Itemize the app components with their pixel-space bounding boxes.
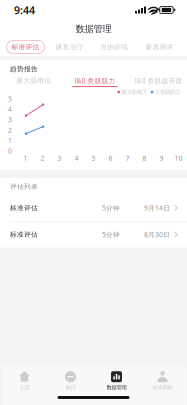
staticText: 5 <box>8 94 12 103</box>
staticText: 8 <box>142 154 146 163</box>
staticText: 趋势报告 <box>10 65 38 73</box>
staticText: 9 <box>159 154 163 163</box>
staticText: 2 <box>40 154 44 163</box>
button[interactable]: 教程 <box>47 368 93 394</box>
button[interactable]: I&II 类肌肌力 <box>72 76 118 87</box>
staticText: 5 <box>91 154 95 163</box>
staticText: 0 <box>8 146 12 155</box>
button[interactable]: 量表测评 <box>140 40 178 54</box>
staticText: 标准评估 <box>10 230 38 239</box>
staticText: I&II 类肌疲劳度 <box>134 76 182 85</box>
staticText: 康复治疗 <box>55 43 83 51</box>
staticText: 最大肌电位 <box>16 76 51 85</box>
button[interactable]: 最大肌电位 <box>9 76 59 87</box>
button[interactable]: 数据管理 <box>93 368 139 394</box>
staticText: 10 <box>174 154 182 163</box>
staticText: 账本我的 <box>152 384 172 391</box>
staticText: 最大肌电力 <box>122 89 147 95</box>
button[interactable]: 标准评估 <box>0 222 187 248</box>
staticText: I&II 类肌肌力 <box>74 76 115 85</box>
staticText: 大类肌肌力 <box>155 89 180 95</box>
staticText: 3 <box>57 154 61 163</box>
staticText: 2 <box>8 126 12 134</box>
staticText: 7 <box>125 154 129 163</box>
staticText: 5分钟 <box>102 204 120 212</box>
staticText: 主页 <box>19 384 29 391</box>
button[interactable]: 自由训练 <box>95 40 133 54</box>
staticText: 1 <box>8 136 12 145</box>
staticText: 标准评估 <box>10 204 38 212</box>
staticText: 9:44 <box>14 3 35 17</box>
staticText: 6 <box>108 154 112 163</box>
staticText: 量表测评 <box>145 43 173 51</box>
staticText: 教程 <box>65 384 75 391</box>
staticText: 9月14日 <box>144 204 170 212</box>
staticText: 自由训练 <box>100 43 128 51</box>
staticText: 标准评估 <box>11 43 39 51</box>
button[interactable]: 康复治疗 <box>50 40 88 54</box>
button[interactable]: 账本我的 <box>139 368 185 394</box>
button[interactable]: 标准评估 <box>6 40 44 54</box>
staticText: 3 <box>8 115 12 124</box>
staticText: 数据管理 <box>106 384 126 391</box>
staticText: 1 <box>23 154 27 163</box>
staticText: 8月30日 <box>144 230 170 239</box>
button[interactable]: I&II 类肌疲劳度 <box>131 76 186 87</box>
staticText: 4 <box>8 105 12 114</box>
staticText: 5分钟 <box>102 230 120 239</box>
button[interactable]: 标准评估 <box>0 195 187 221</box>
staticText: 评估列表 <box>10 182 38 191</box>
staticText: 4 <box>74 154 78 163</box>
staticText: 数据管理 <box>75 23 111 35</box>
button[interactable]: 主页 <box>1 368 47 394</box>
